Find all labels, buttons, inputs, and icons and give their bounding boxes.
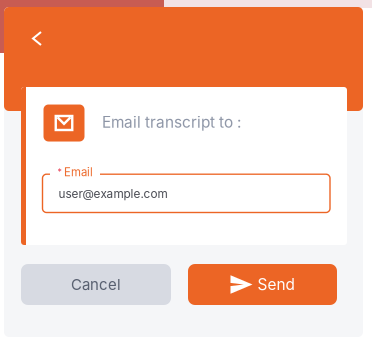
- button[interactable]: Send: [188, 264, 337, 305]
- staticText: Email: [64, 165, 93, 179]
- button[interactable]: Back: [21, 20, 53, 57]
- staticText: *: [57, 167, 61, 177]
- button[interactable]: Cancel: [21, 264, 171, 305]
- staticText: Send: [257, 275, 294, 294]
- staticText: Cancel: [71, 275, 121, 294]
- staticText: user@example.com: [58, 187, 167, 201]
- staticText: Email transcript to :: [102, 113, 241, 132]
